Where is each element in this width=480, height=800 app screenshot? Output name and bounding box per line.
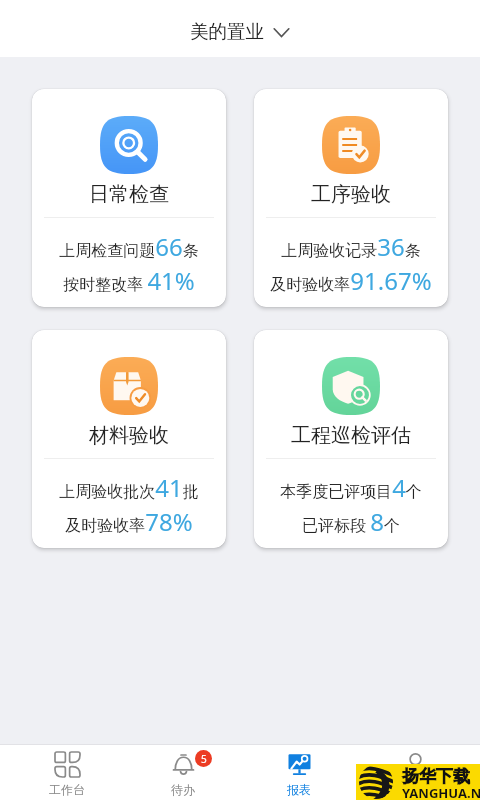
staticText: 日常检查 [89, 182, 169, 207]
staticText: 按时整改率 41% [63, 264, 195, 297]
button[interactable]: 日常检查 [32, 89, 226, 307]
button[interactable]: 材料验收 [32, 330, 226, 548]
button[interactable]: 工序验收 [254, 89, 448, 307]
staticText: 我的 [403, 782, 427, 797]
other: 待办 [171, 752, 196, 777]
staticText: 本季度已评项目4个 [280, 471, 422, 504]
button[interactable]: 工作台 [9, 745, 125, 800]
staticText: 美的置业 [190, 20, 264, 43]
staticText: 及时验收率91.67% [270, 264, 432, 297]
staticText: 待办 [171, 782, 195, 797]
staticText: 上周验收记录36条 [281, 230, 421, 263]
staticText: 及时验收率78% [65, 505, 193, 538]
other: 我的 [403, 752, 428, 777]
button[interactable]: 我的 [357, 745, 473, 800]
staticText: 材料验收 [89, 423, 169, 448]
button[interactable]: 美的置业 [178, 11, 302, 46]
staticText: 已评标段 8个 [302, 505, 400, 538]
staticText: 上周验收批次41批 [59, 471, 199, 504]
staticText: YANGHUA.NET [402, 784, 480, 800]
staticText: 报表 [287, 782, 311, 797]
staticText: 工程巡检评估 [291, 423, 411, 448]
other: 工作台 [55, 752, 80, 777]
staticText: 5 [201, 752, 207, 766]
staticText: 扬华下载 [402, 766, 470, 787]
other: 报表 [287, 752, 312, 777]
staticText: 工作台 [49, 782, 85, 797]
staticText: 上周检查问题66条 [59, 230, 199, 263]
button[interactable]: 待办 [125, 745, 241, 800]
button[interactable]: 工程巡检评估 [254, 330, 448, 548]
button[interactable]: 报表 [241, 745, 357, 800]
staticText: 工序验收 [311, 182, 391, 207]
